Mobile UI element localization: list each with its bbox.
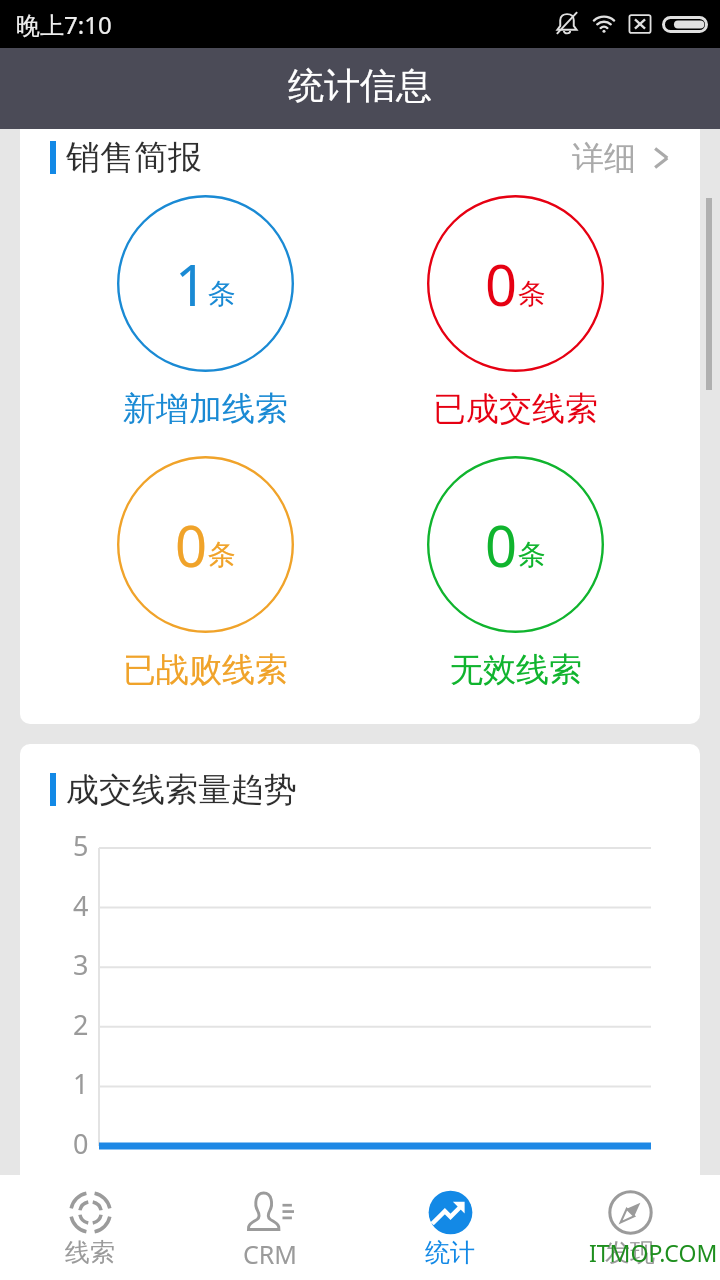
- staticText: 新增加线索: [123, 388, 288, 430]
- staticText: 线索: [65, 1237, 115, 1268]
- button[interactable]: 0: [427, 195, 604, 430]
- staticText: 1: [175, 246, 208, 322]
- staticText: 0: [175, 507, 208, 583]
- staticText: 统计: [425, 1237, 475, 1268]
- staticText: 0: [485, 246, 518, 322]
- button[interactable]: 1: [117, 195, 294, 430]
- staticText: 已成交线索: [433, 388, 598, 430]
- button[interactable]: CRM: [180, 1175, 360, 1271]
- button[interactable]: 统计: [360, 1175, 540, 1268]
- staticText: CRM: [243, 1237, 298, 1271]
- staticText: 0: [485, 507, 518, 583]
- staticText: 详细: [572, 138, 636, 178]
- other: No SIM: [628, 12, 652, 36]
- other: Silent mode: [554, 11, 580, 37]
- staticText: 4: [73, 887, 89, 924]
- staticText: 条: [208, 276, 236, 311]
- staticText: 成交线索量趋势: [66, 769, 297, 811]
- staticText: 2: [73, 1006, 89, 1043]
- button[interactable]: 详细: [572, 129, 700, 186]
- button[interactable]: 0: [117, 456, 294, 691]
- staticText: 已战败线索: [123, 649, 288, 691]
- staticText: 晚上7:10: [16, 8, 112, 41]
- other: Wi-Fi: [590, 11, 618, 37]
- staticText: 统计信息: [288, 63, 432, 108]
- other: Battery: [662, 16, 708, 33]
- staticText: 条: [518, 276, 546, 311]
- staticText: 0: [73, 1125, 89, 1162]
- staticText: 条: [208, 537, 236, 572]
- staticText: 5: [73, 827, 89, 864]
- staticText: 发现: [605, 1237, 655, 1268]
- staticText: 条: [518, 537, 546, 572]
- button[interactable]: 线索: [0, 1175, 180, 1268]
- staticText: 1: [73, 1065, 89, 1102]
- button[interactable]: 发现: [540, 1175, 720, 1268]
- staticText: 无效线索: [450, 649, 582, 691]
- staticText: 3: [73, 946, 89, 983]
- staticText: 销售简报: [66, 136, 202, 179]
- button[interactable]: 0: [427, 456, 604, 691]
- staticText: ITMOP.COM: [589, 1237, 718, 1268]
